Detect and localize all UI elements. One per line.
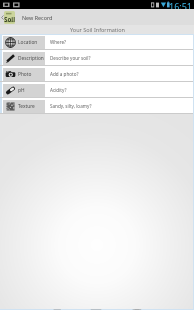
staticText: 16:51 — [169, 0, 193, 9]
staticText: pH — [18, 87, 25, 94]
button[interactable]: pH — [0, 82, 194, 98]
staticText: Texture — [18, 103, 35, 110]
button[interactable]: Texture — [0, 98, 194, 114]
button[interactable]: Location — [0, 34, 194, 50]
staticText: Photo — [18, 71, 32, 78]
button[interactable]: Description — [0, 50, 194, 66]
staticText: Describe your soil? — [50, 55, 91, 61]
staticText: Location — [18, 39, 38, 46]
staticText: Add a photo? — [50, 71, 79, 77]
staticText: Your Soil Information — [70, 26, 125, 33]
button[interactable]: Navigate up — [0, 9, 15, 25]
staticText: Where? — [50, 39, 67, 45]
button[interactable]: Photo — [0, 66, 194, 82]
staticText: Description — [18, 55, 44, 62]
staticText: Soil — [4, 15, 15, 23]
staticText: New Record — [22, 14, 53, 21]
staticText: Acidity? — [50, 87, 67, 93]
staticText: Sandy, silty, loamy? — [50, 103, 92, 109]
